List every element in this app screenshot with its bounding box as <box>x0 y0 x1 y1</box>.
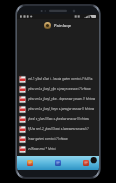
other: PDF file <box>19 126 26 133</box>
button[interactable]: Painlaqe <box>17 19 99 32</box>
button[interactable]: PDF file <box>17 94 99 104</box>
other: PDF file <box>19 146 26 153</box>
button[interactable]: PDF file <box>17 74 99 84</box>
other: PDF file <box>19 86 26 93</box>
button[interactable]: PDF file <box>17 124 99 134</box>
staticText: ydw sml-x_jkoyl_yjln x-jewyn wssxw // lv… <box>28 87 91 91</box>
button[interactable]: PDF file <box>17 134 99 144</box>
other: PDF file <box>19 76 26 83</box>
staticText: ydw sml-x_jkoyl_yilw - dqxwnsw yoswx // … <box>28 97 96 101</box>
staticText: ylwsl x_ylwsl lXwx x-ylwsbw wssxw () lvh… <box>28 117 89 121</box>
button[interactable]: PDF file <box>17 114 99 124</box>
button[interactable]: Store <box>83 160 89 166</box>
other: PDF file <box>19 136 26 143</box>
other: PDF file <box>19 96 26 103</box>
staticText: vslXwwsmsi * lvhtoi <box>28 147 56 151</box>
button[interactable]: PDF file <box>17 144 99 154</box>
staticText: lnsw gwtmi comtoi // lvhtow <box>28 137 68 141</box>
staticText: vol-1 ylbvl sXwi i - lavaia gwtm comtoi … <box>28 77 97 81</box>
button[interactable]: PDF file <box>17 84 99 94</box>
staticText: Painlaqe <box>54 23 72 29</box>
button[interactable]: Gallery <box>27 160 33 166</box>
staticText: ydw sml-x_jkoyl_fwyn x-jwwyjw wssxw () l… <box>28 107 95 111</box>
staticText: fjlUw sml-2_ylwsl lXwxi x-lwwsww wssxwl … <box>28 127 97 131</box>
other: PDF file <box>19 116 26 123</box>
button[interactable]: Messages <box>55 160 61 166</box>
other: PDF file <box>19 106 26 113</box>
button[interactable]: PDF file <box>17 104 99 114</box>
